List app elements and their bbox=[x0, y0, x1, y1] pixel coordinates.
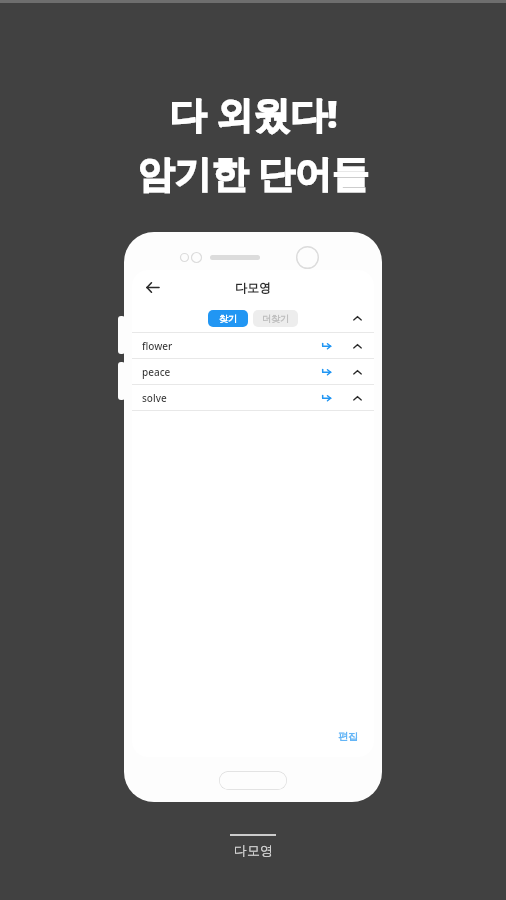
button[interactable]: flower bbox=[132, 333, 374, 358]
button[interactable]: peace bbox=[132, 359, 374, 384]
button[interactable]: Collapse bbox=[348, 389, 366, 407]
staticText: solve bbox=[142, 391, 167, 405]
staticText: 다 외웠다! bbox=[169, 88, 338, 139]
button[interactable]: Collapse bbox=[348, 337, 366, 355]
button[interactable]: Move bbox=[318, 363, 336, 381]
button[interactable]: 찾기 bbox=[208, 310, 248, 327]
staticText: 더찾기 bbox=[262, 313, 289, 324]
staticText: 편집 bbox=[338, 730, 358, 743]
button[interactable]: Collapse bbox=[348, 363, 366, 381]
button[interactable]: Move bbox=[318, 337, 336, 355]
staticText: flower bbox=[142, 339, 173, 353]
staticText: 다모영 bbox=[235, 280, 271, 295]
staticText: 다모영 bbox=[234, 842, 273, 858]
button[interactable]: 편집 bbox=[334, 726, 362, 747]
staticText: 암기한 단어들 bbox=[137, 147, 369, 198]
button[interactable]: Back bbox=[140, 275, 164, 299]
staticText: peace bbox=[142, 365, 171, 379]
button[interactable]: Move bbox=[318, 389, 336, 407]
staticText: 찾기 bbox=[219, 313, 237, 324]
button[interactable]: 더찾기 bbox=[253, 310, 298, 327]
button[interactable]: solve bbox=[132, 385, 374, 410]
button[interactable]: Collapse bbox=[348, 309, 366, 327]
